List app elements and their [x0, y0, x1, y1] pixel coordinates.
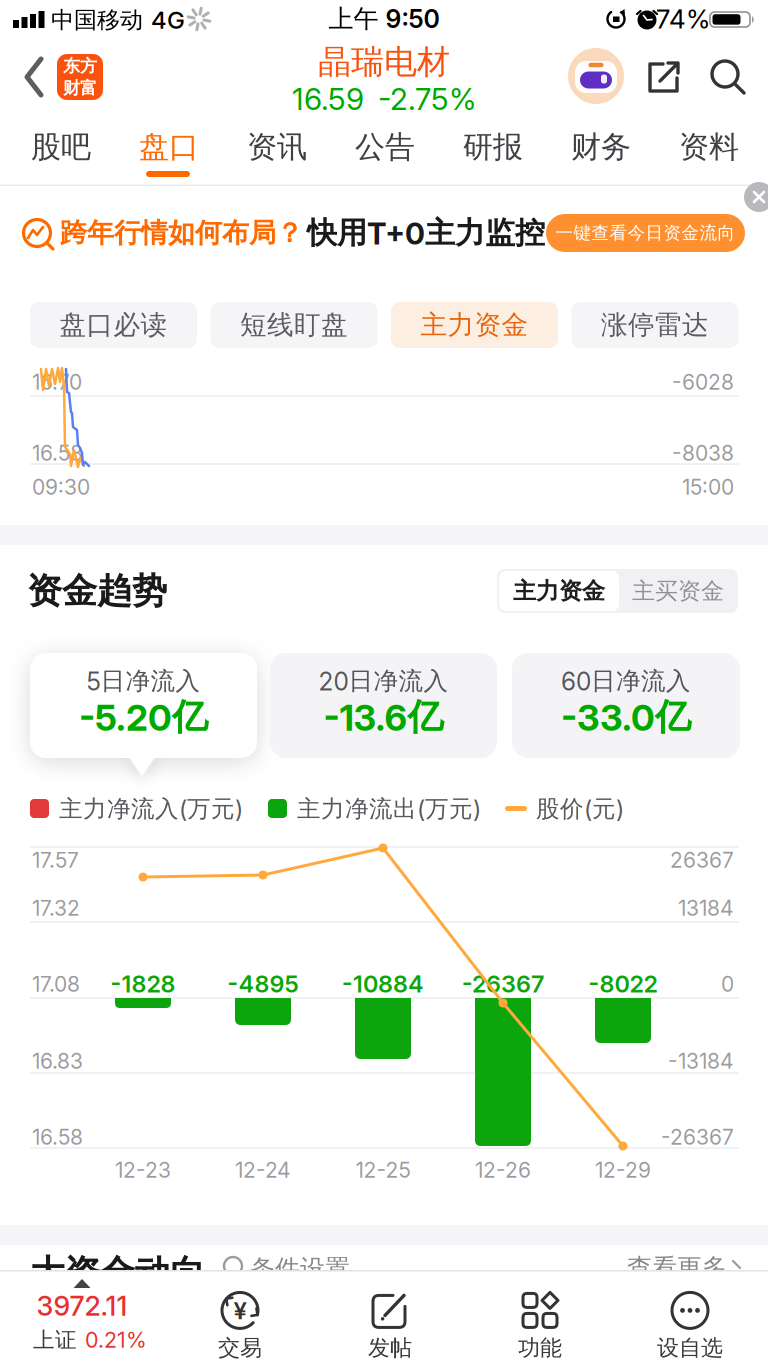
staticText: 上午 [328, 4, 378, 34]
button[interactable]: 公告 [337, 121, 433, 173]
button[interactable]: 查看更多 [627, 1253, 767, 1283]
button[interactable]: 短线盯盘 [210, 302, 377, 348]
button[interactable]: 主力资金 [499, 571, 619, 611]
staticText: -2.75% [378, 81, 476, 117]
staticText: 资料 [679, 128, 739, 165]
staticText: 12-25 [355, 1157, 410, 1182]
button[interactable]: 财务 [553, 121, 649, 173]
button[interactable]: Close [744, 182, 768, 212]
button[interactable]: 东方财富 [57, 54, 103, 100]
staticText: 涨停雷达 [601, 309, 709, 341]
staticText: 财务 [571, 128, 631, 165]
button[interactable]: 3972.11 [7, 1270, 167, 1364]
button[interactable]: 20日净流入 [270, 653, 497, 758]
staticText: 0 [721, 971, 734, 996]
staticText: 13184 [678, 895, 734, 920]
staticText: 财富 [63, 77, 97, 98]
staticText: -6028 [672, 369, 734, 394]
staticText: 17.57 [32, 847, 79, 872]
staticText: 16.58 [32, 440, 83, 465]
staticText: 上证 [33, 1327, 77, 1353]
staticText: 17.08 [32, 971, 80, 996]
staticText: 主力资金 [420, 309, 528, 341]
staticText: -1828 [110, 970, 175, 998]
staticText: 16.70 [32, 369, 82, 394]
staticText: -8038 [672, 440, 734, 465]
staticText: 16.83 [32, 1048, 83, 1073]
staticText: 盘口必读 [59, 309, 167, 341]
staticText: 发帖 [368, 1334, 412, 1362]
staticText: 晶瑞电材 [318, 42, 450, 82]
staticText: 16.58 [32, 1124, 83, 1149]
staticText: -13.6亿 [323, 695, 443, 739]
staticText: -33.0亿 [561, 695, 691, 739]
staticText: 中国移动 [51, 6, 143, 34]
staticText: 主力资金 [513, 577, 605, 605]
staticText: 股吧 [31, 128, 91, 165]
staticText: 12-29 [595, 1157, 651, 1182]
button[interactable]: 盘口必读 [30, 302, 197, 348]
staticText: 9:50 [385, 4, 439, 34]
staticText: -8022 [588, 970, 657, 998]
staticText: 条件设置 [250, 1254, 350, 1284]
staticText: 4G [151, 6, 185, 34]
staticText: 12-23 [115, 1157, 171, 1182]
button[interactable]: 研报 [445, 121, 541, 173]
button[interactable]: 交易 [170, 1282, 310, 1366]
staticText: 12-24 [235, 1157, 291, 1182]
button[interactable]: Back [25, 57, 47, 97]
button[interactable]: 5日净流入 [30, 653, 257, 758]
button[interactable]: Search [710, 59, 746, 95]
staticText: 功能 [518, 1334, 562, 1362]
staticText: 主买资金 [632, 577, 724, 605]
staticText: -4895 [227, 970, 298, 998]
button[interactable]: Share [646, 57, 682, 95]
staticText: -13184 [668, 1048, 734, 1073]
button[interactable]: 资料 [661, 121, 757, 173]
staticText: 15:00 [682, 474, 734, 499]
staticText: ¥ [233, 1296, 246, 1325]
staticText: -10884 [342, 970, 424, 998]
button[interactable]: 主力资金 [391, 302, 558, 348]
staticText: 0.21% [85, 1327, 147, 1353]
button[interactable]: 条件设置 [250, 1254, 390, 1284]
staticText: 公告 [355, 128, 415, 165]
button[interactable]: 资讯 [229, 121, 325, 173]
button[interactable]: 发帖 [320, 1282, 460, 1366]
button[interactable]: 助手 [568, 48, 624, 104]
staticText: 09:30 [32, 474, 90, 499]
button[interactable]: 功能 [470, 1282, 610, 1366]
button[interactable]: 盘口 [121, 121, 217, 173]
staticText: 17.32 [32, 895, 80, 920]
staticText: 74% [656, 4, 710, 34]
staticText: 研报 [463, 128, 523, 165]
button[interactable]: 60日净流入 [512, 653, 740, 758]
staticText: 主力净流出(万元) [297, 794, 481, 823]
staticText: 3972.11 [36, 1290, 127, 1322]
staticText: 大资金动向 [30, 1251, 205, 1295]
staticText: -5.20亿 [79, 695, 208, 739]
staticText: 26367 [670, 847, 734, 872]
staticText: 交易 [218, 1334, 262, 1362]
staticText: 一键查看今日资金流向 [555, 222, 735, 244]
button[interactable]: 一键查看今日资金流向 [546, 214, 745, 252]
staticText: 16.59 [292, 81, 364, 117]
staticText: -26367 [661, 1124, 734, 1149]
staticText: 12-26 [475, 1157, 531, 1182]
button[interactable]: 涨停雷达 [571, 302, 738, 348]
staticText: 60日净流入 [561, 666, 691, 696]
staticText: 查看更多 [627, 1253, 727, 1283]
staticText: 主力净流入(万元) [59, 794, 243, 823]
button[interactable]: 主买资金 [619, 571, 737, 611]
staticText: 东方 [63, 55, 97, 76]
button[interactable]: 设自选 [620, 1282, 760, 1366]
staticText: 5日净流入 [86, 666, 200, 696]
staticText: 盘口 [139, 128, 199, 165]
staticText: 设自选 [657, 1334, 723, 1362]
staticText: 快用T+0主力监控 [307, 214, 545, 251]
staticText: -26367 [462, 970, 544, 998]
staticText: 跨年行情如何布局？ [60, 216, 303, 250]
button[interactable]: 跨年行情如何布局？ [0, 186, 768, 291]
staticText: 短线盯盘 [240, 309, 348, 341]
button[interactable]: 股吧 [13, 121, 109, 173]
